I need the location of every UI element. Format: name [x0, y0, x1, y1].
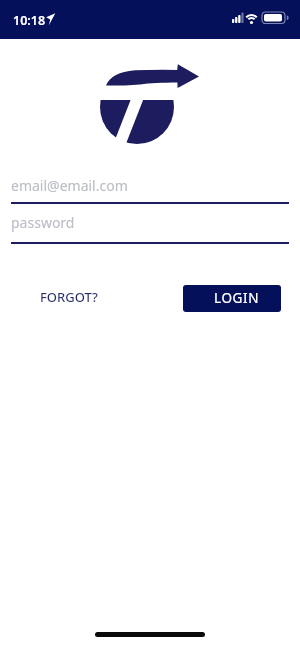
staticText: 10:18 — [13, 12, 46, 29]
button[interactable]: email@email.com — [0, 168, 300, 206]
staticText: FORGOT? — [40, 288, 98, 306]
staticText: password — [11, 213, 75, 232]
staticText: email@email.com — [11, 176, 128, 195]
button[interactable]: FORGOT? — [34, 283, 92, 301]
button[interactable]: LOGIN — [183, 285, 281, 312]
button[interactable]: password — [0, 208, 300, 246]
staticText: LOGIN — [214, 289, 260, 307]
